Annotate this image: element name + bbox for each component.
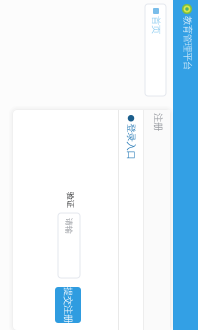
staticText: 注册 bbox=[47, 100, 65, 112]
button[interactable]: 注册 bbox=[47, 100, 147, 112]
button[interactable]: 登录入口 bbox=[49, 127, 149, 139]
